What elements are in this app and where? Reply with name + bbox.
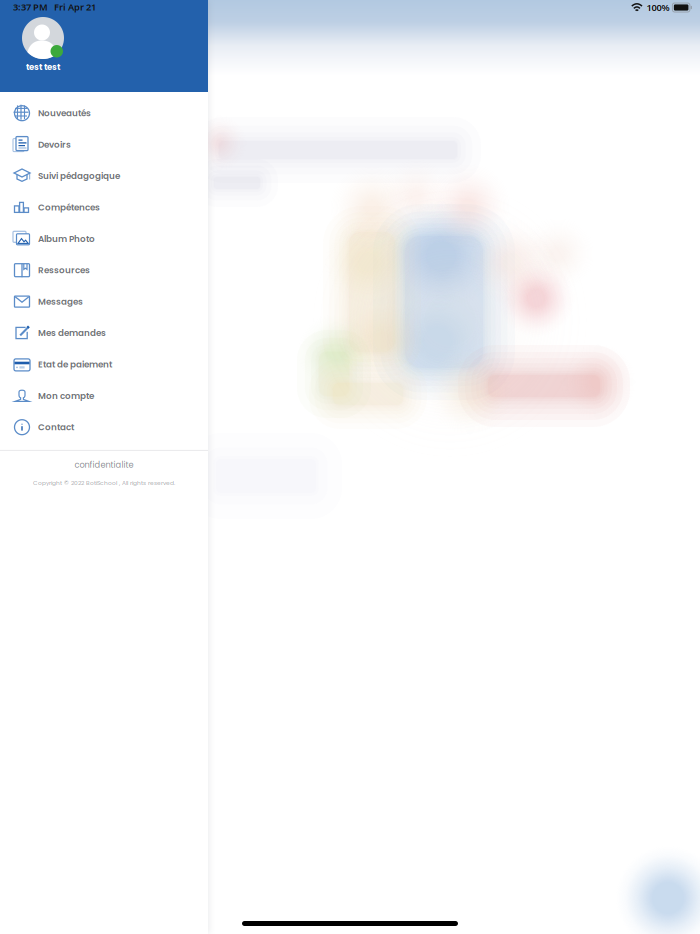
- staticText: Mes demandes: [38, 327, 106, 339]
- staticText: Etat de paiement: [38, 358, 112, 370]
- button[interactable]: Devoirs: [0, 129, 208, 160]
- staticText: Fri Apr 21: [54, 1, 96, 13]
- button[interactable]: Ressources: [0, 254, 208, 286]
- staticText: 100%: [646, 1, 669, 14]
- staticText: Nouveautés: [38, 107, 91, 119]
- staticText: Suivi pédagogique: [38, 170, 120, 182]
- staticText: Devoirs: [38, 138, 71, 151]
- staticText: confidentialite: [74, 459, 133, 471]
- button[interactable]: Compétences: [0, 192, 208, 223]
- button[interactable]: Nouveautés: [0, 97, 208, 129]
- staticText: Messages: [38, 295, 83, 308]
- button[interactable]: Messages: [0, 286, 208, 317]
- staticText: 3:37 PM: [13, 1, 48, 13]
- staticText: Album Photo: [38, 233, 95, 245]
- staticText: Copyright © 2022 BotiSchool , All rights…: [33, 479, 175, 487]
- button[interactable]: Contact: [0, 411, 208, 443]
- button[interactable]: confidentialite: [0, 451, 208, 479]
- button[interactable]: test test: [0, 14, 64, 73]
- button[interactable]: Suivi pédagogique: [0, 160, 208, 192]
- staticText: Compétences: [38, 201, 100, 213]
- staticText: Mon compte: [38, 390, 94, 402]
- button[interactable]: Album Photo: [0, 223, 208, 254]
- staticText: test test: [26, 61, 60, 73]
- button[interactable]: Etat de paiement: [0, 349, 208, 380]
- staticText: Ressources: [38, 264, 90, 276]
- button[interactable]: Mon compte: [0, 380, 208, 411]
- button[interactable]: Mes demandes: [0, 317, 208, 349]
- staticText: Contact: [38, 421, 74, 433]
